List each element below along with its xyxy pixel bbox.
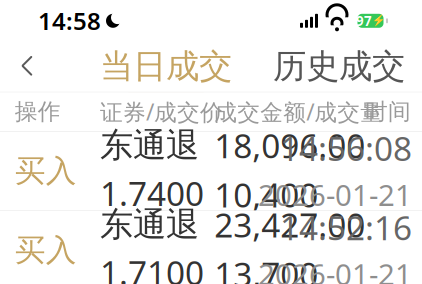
staticText: 时间 [365, 98, 411, 126]
staticText: 1.7100 [100, 250, 204, 284]
staticText: 14:52:16 [280, 205, 412, 249]
staticText: ⚡ [372, 15, 385, 27]
staticText: 当日成交 [100, 46, 232, 87]
staticText: 10,400 [214, 173, 318, 217]
button[interactable]: 历史成交 [273, 36, 405, 96]
staticText: 18,096.00 [214, 123, 365, 168]
staticText: 成交金额/成交量 [214, 97, 383, 127]
staticText: 13,700 [214, 252, 318, 284]
staticText: 历史成交 [273, 46, 405, 87]
button[interactable]: 买入 [0, 132, 422, 210]
staticText: 买入 [15, 152, 77, 190]
staticText: 1.7400 [100, 171, 204, 215]
staticText: 东通退 [100, 204, 199, 245]
button[interactable]: Back [0, 40, 54, 92]
staticText: 2026-01-21 [258, 175, 412, 214]
staticText: 操作 [15, 98, 61, 126]
staticText: 14:56:08 [280, 126, 412, 170]
button[interactable]: 买入 [0, 211, 422, 284]
staticText: 14:58 [38, 5, 101, 37]
staticText: 买入 [15, 231, 77, 269]
staticText: 23,427.00 [214, 202, 365, 247]
staticText: 97 [356, 12, 372, 30]
staticText: 东通退 [100, 125, 199, 166]
staticText: 2026-01-21 [258, 254, 412, 284]
button[interactable]: 当日成交 [100, 36, 232, 96]
staticText: 证券/成交价 [100, 97, 223, 127]
